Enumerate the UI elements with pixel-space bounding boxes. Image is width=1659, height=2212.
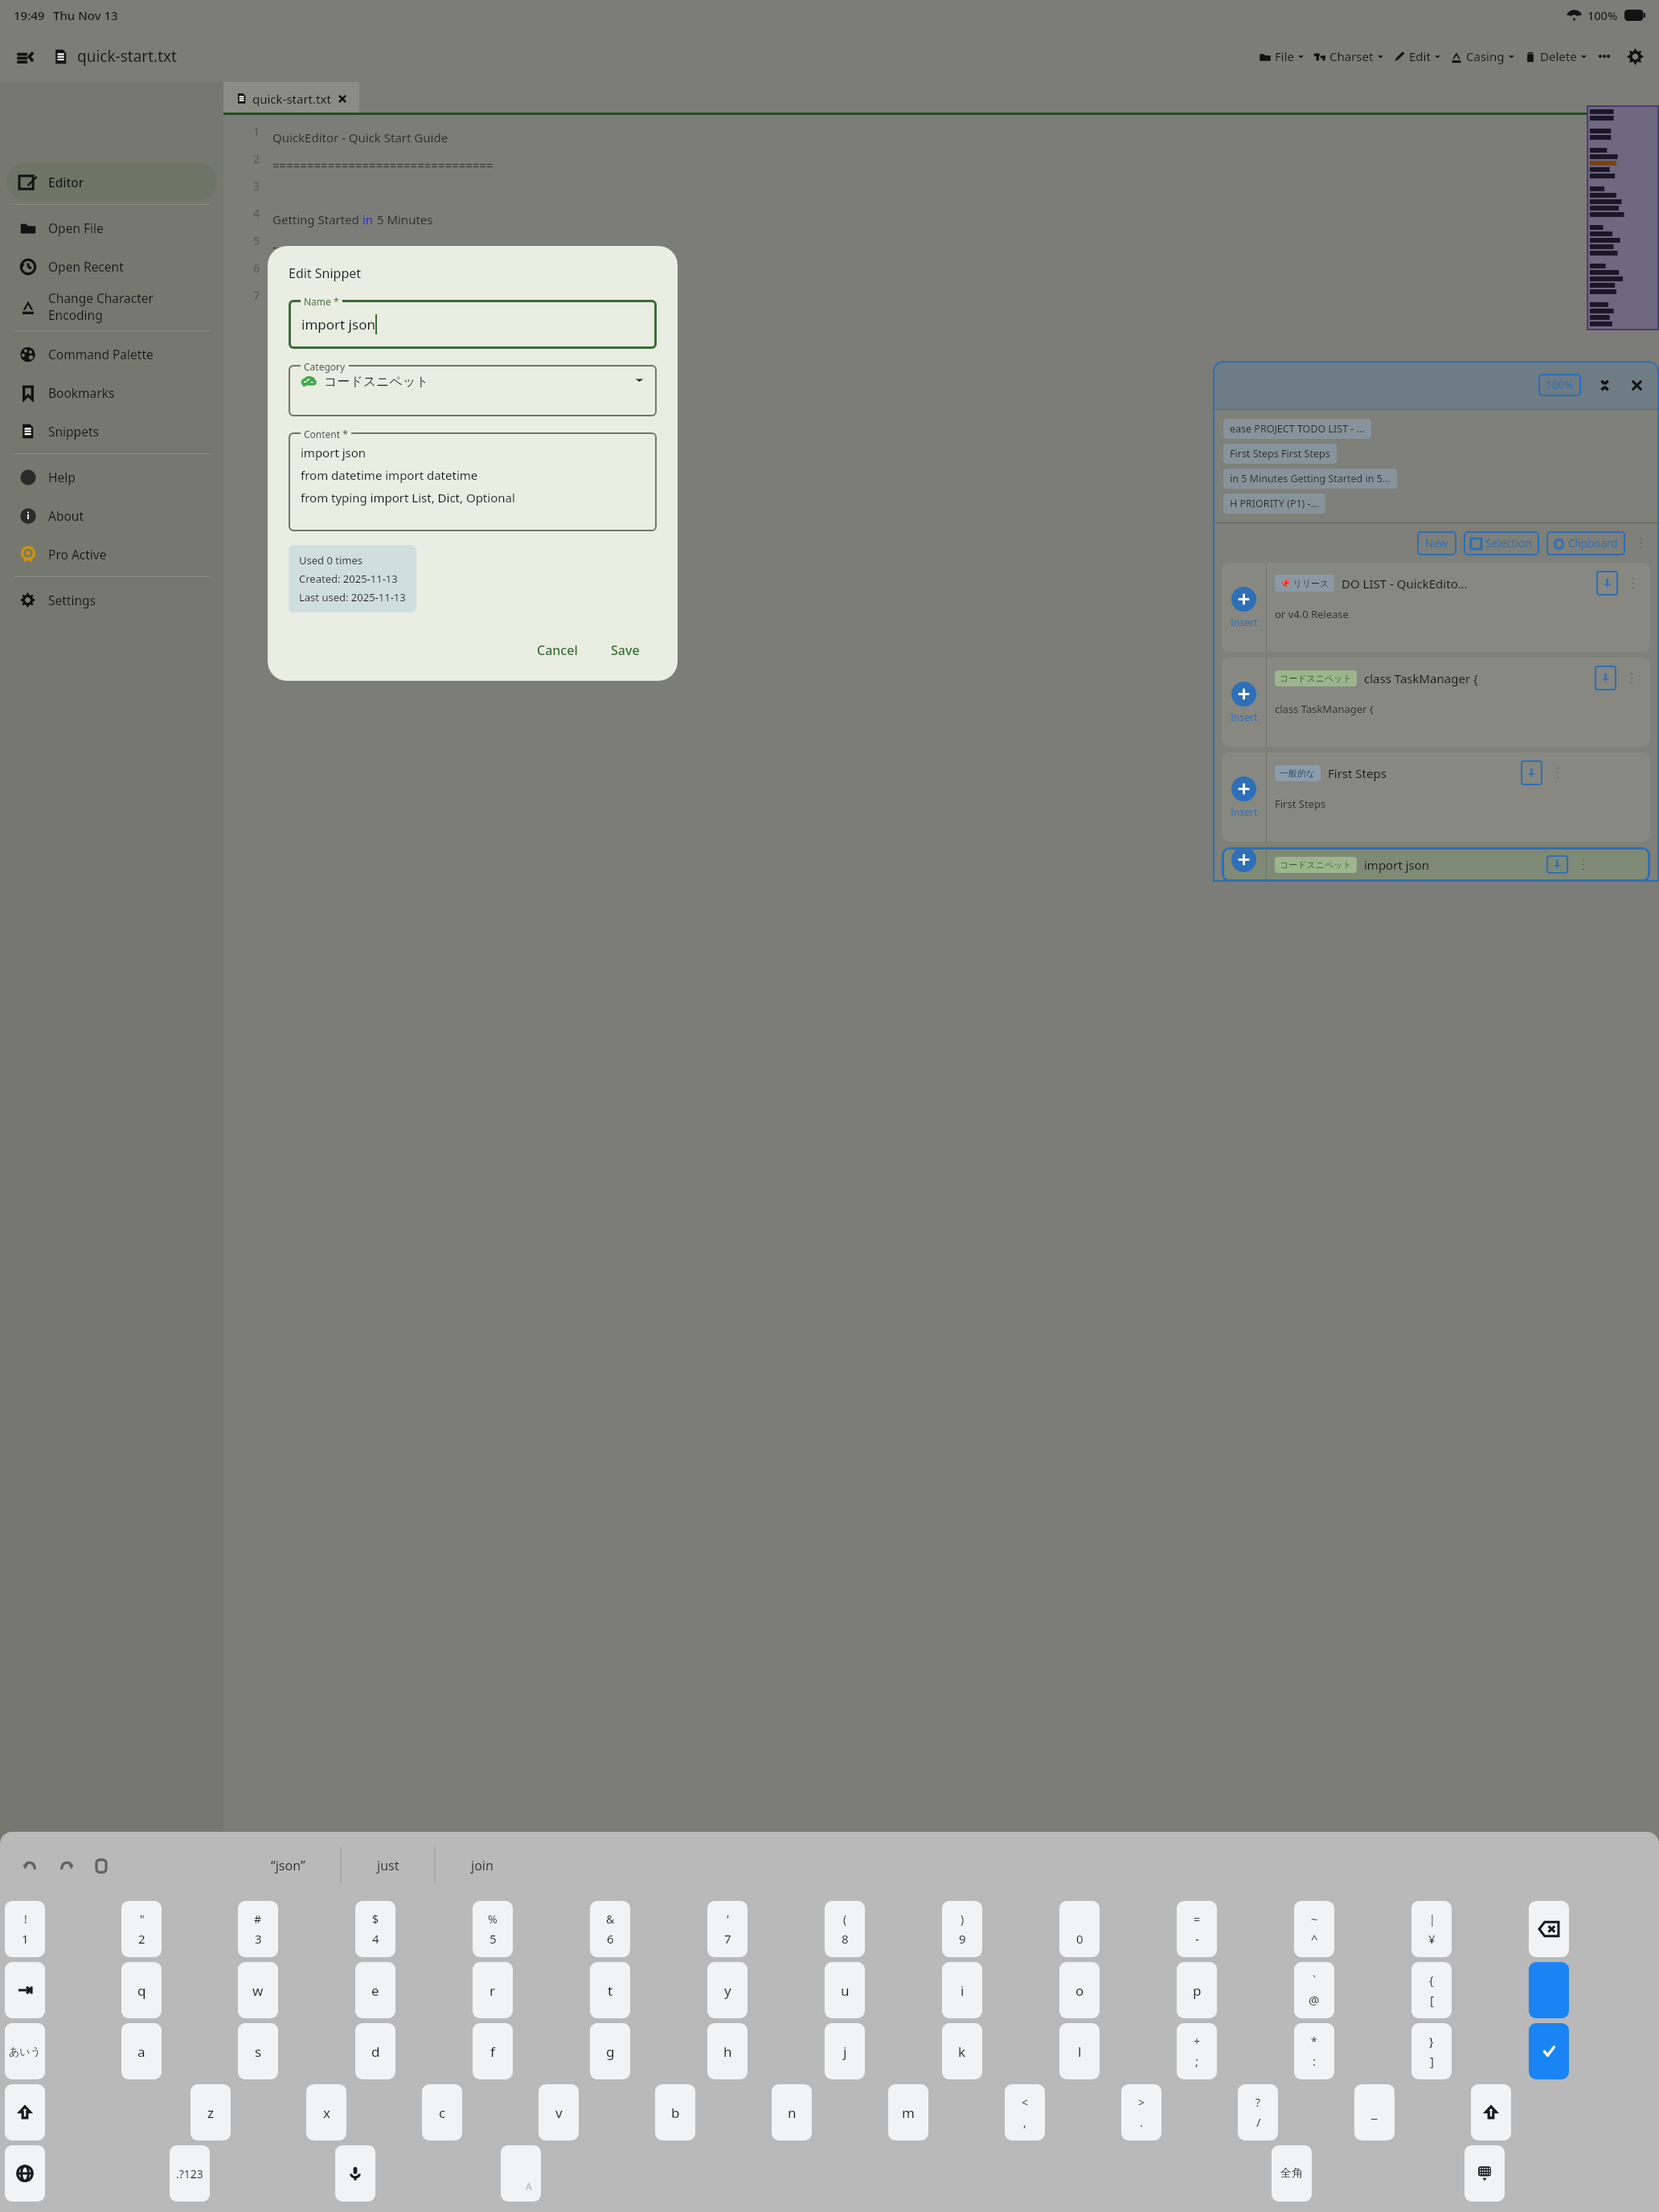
button[interactable]: More (1574, 855, 1592, 874)
button[interactable]: i (942, 1962, 982, 2018)
button[interactable]: Redo (51, 1851, 80, 1879)
button[interactable]: A (501, 2145, 541, 2202)
button[interactable]: 100% (1538, 374, 1581, 396)
button[interactable]: Pin (1595, 666, 1616, 690)
button[interactable]: u (825, 1962, 865, 2018)
button[interactable]: Change Character Encoding (6, 285, 217, 327)
button[interactable]: Help (6, 457, 217, 496)
button[interactable]: About (6, 496, 217, 535)
button[interactable]: join (436, 1857, 528, 1874)
button[interactable]: h (707, 2023, 748, 2079)
button[interactable]: o (1059, 1962, 1100, 2018)
button[interactable] (1471, 2084, 1511, 2140)
button[interactable]: | (1411, 1901, 1452, 1957)
button[interactable]: v (539, 2084, 579, 2140)
button[interactable]: ) (942, 1901, 982, 1957)
button[interactable]: Collapse (1593, 374, 1616, 396)
button[interactable]: Insert (1222, 657, 1650, 747)
button[interactable]: just (342, 1857, 434, 1874)
button[interactable]: 全角 (1272, 2145, 1312, 2202)
button[interactable]: Close panel (1625, 374, 1648, 396)
button[interactable] (335, 2145, 375, 2202)
button[interactable]: Snippets (6, 412, 217, 450)
button[interactable]: _ (1354, 2084, 1395, 2140)
button[interactable]: e (355, 1962, 395, 2018)
button[interactable]: ( (825, 1901, 865, 1957)
button[interactable]: More (1622, 666, 1641, 690)
button[interactable] (1464, 2145, 1505, 2202)
button[interactable]: H PRIORITY (P1) -... (1223, 494, 1325, 514)
button[interactable]: New (1417, 531, 1456, 555)
button[interactable]: Pin (1546, 855, 1568, 874)
button[interactable]: d (355, 2023, 395, 2079)
button[interactable]: Bookmarks (6, 373, 217, 412)
button[interactable]: Selection (1464, 531, 1539, 555)
button[interactable] (1529, 1901, 1569, 1957)
button[interactable]: Previous (348, 2150, 379, 2177)
button[interactable]: { (1411, 1962, 1452, 2018)
button[interactable]: 0 (1059, 1901, 1100, 1957)
button[interactable]: = (1177, 1901, 1217, 1957)
button[interactable]: + (1177, 2023, 1217, 2079)
button[interactable]: & (590, 1901, 630, 1957)
button[interactable]: j (825, 2023, 865, 2079)
button[interactable] (1529, 2023, 1569, 2079)
button[interactable]: Casing (1445, 45, 1519, 68)
button[interactable]: > (1121, 2084, 1161, 2140)
button[interactable]: r (473, 1962, 513, 2018)
button[interactable]: Tools (311, 2150, 342, 2177)
button[interactable]: Command Palette (6, 334, 217, 373)
button[interactable]: b (655, 2084, 695, 2140)
button[interactable] (5, 2145, 45, 2202)
button[interactable]: a (121, 2023, 162, 2079)
button[interactable]: Save (600, 636, 651, 665)
button[interactable]: File (1254, 45, 1309, 68)
button[interactable]: Charset (1309, 45, 1388, 68)
button[interactable]: Delete (1519, 45, 1591, 68)
button[interactable]: < (1005, 2084, 1045, 2140)
button[interactable]: ' (707, 1901, 748, 1957)
button[interactable]: Menu (10, 43, 39, 71)
button[interactable]: Open File (6, 208, 217, 247)
button[interactable]: Settings (6, 580, 217, 619)
button[interactable]: ? (1238, 2084, 1278, 2140)
button[interactable]: s (238, 2023, 278, 2079)
button[interactable]: x (306, 2084, 346, 2140)
button[interactable]: $ (355, 1901, 395, 1957)
button[interactable]: Pin (1521, 760, 1542, 785)
button[interactable]: t (590, 1962, 630, 2018)
button[interactable]: q (121, 1962, 162, 2018)
button[interactable]: * (1294, 2023, 1334, 2079)
button[interactable]: More (1548, 760, 1567, 785)
button[interactable]: k (942, 2023, 982, 2079)
button[interactable]: Insert (1222, 563, 1650, 652)
button[interactable]: Insert (1222, 752, 1650, 842)
button[interactable]: More (1632, 530, 1650, 555)
button[interactable]: # (238, 1901, 278, 1957)
button[interactable]: First Steps First Steps (1223, 444, 1337, 464)
button[interactable]: Pro Active (6, 535, 217, 573)
button[interactable]: y (707, 1962, 748, 2018)
button[interactable]: l (1059, 2023, 1100, 2079)
button[interactable]: c (422, 2084, 462, 2140)
button[interactable]: ~ (1294, 1901, 1334, 1957)
button[interactable]: " (121, 1901, 162, 1957)
button[interactable]: ! (5, 1901, 45, 1957)
button[interactable]: Insert (1222, 847, 1650, 882)
button[interactable]: in 5 Minutes Getting Started in 5... (1223, 469, 1397, 489)
button[interactable]: More options (1591, 43, 1617, 69)
button[interactable]: g (590, 2023, 630, 2079)
button[interactable]: “json” (236, 1857, 340, 1874)
button[interactable]: Pin (1596, 571, 1618, 596)
button[interactable]: ` (1294, 1962, 1334, 2018)
button[interactable]: Clipboard (87, 1851, 115, 1879)
button[interactable]: } (1411, 2023, 1452, 2079)
button[interactable]: ease PROJECT TODO LIST - ... (1223, 419, 1371, 439)
button[interactable]: Settings (1622, 43, 1649, 70)
button[interactable] (1529, 1962, 1569, 2018)
button[interactable]: あいう (5, 2023, 45, 2079)
button[interactable]: w (238, 1962, 278, 2018)
